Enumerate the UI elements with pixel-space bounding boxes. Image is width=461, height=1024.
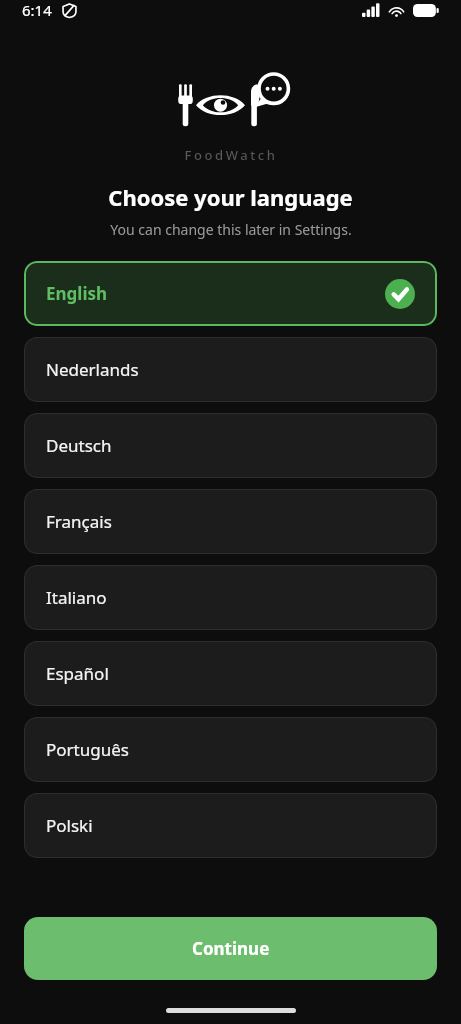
staticText: Choose your language (108, 182, 353, 212)
other: FoodWatch logo (161, 74, 301, 134)
staticText: Italiano (46, 586, 107, 609)
staticText: Polski (46, 814, 93, 837)
button[interactable]: Deutsch (24, 413, 437, 478)
button[interactable]: Polski (24, 793, 437, 858)
button[interactable]: Français (24, 489, 437, 554)
staticText: Français (46, 510, 112, 533)
staticText: English (46, 282, 108, 305)
staticText: Português (46, 738, 129, 761)
staticText: Español (46, 662, 109, 685)
staticText: Deutsch (46, 434, 112, 457)
staticText: You can change this later in Settings. (110, 220, 352, 239)
staticText: 6:14 (22, 0, 52, 20)
staticText: Continue (192, 937, 270, 960)
button[interactable]: Continue (24, 917, 437, 980)
staticText: Nederlands (46, 358, 139, 381)
button[interactable]: Nederlands (24, 337, 437, 402)
button[interactable]: Português (24, 717, 437, 782)
button[interactable]: English (24, 261, 437, 326)
button[interactable]: Español (24, 641, 437, 706)
button[interactable]: Italiano (24, 565, 437, 630)
staticText: FoodWatch (184, 146, 278, 164)
